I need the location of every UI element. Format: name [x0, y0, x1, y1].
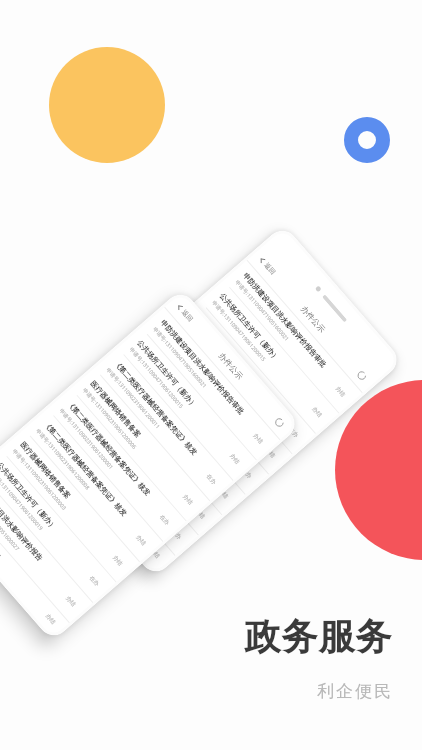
staticText: 申请号:13110904719061200019 — [71, 421, 128, 485]
staticText: 申请号:13110904719051600027 — [0, 488, 22, 552]
staticText: 医疗器械网络销售备案 — [18, 440, 72, 500]
staticText: 办结 — [228, 453, 241, 466]
button[interactable]: 公共场所卫生许可（新办） — [117, 328, 256, 481]
staticText: 办结 — [217, 487, 230, 501]
staticText: 医疗器械网络销售备案 — [89, 379, 143, 439]
staticText: 办结 — [111, 554, 124, 568]
staticText: 在办 — [170, 528, 183, 541]
staticText: 办结 — [64, 595, 78, 608]
button[interactable]: 医疗器械网络销售备案 — [0, 490, 69, 638]
staticText: 办结 — [148, 547, 161, 560]
button[interactable]: 申防洪建设项目洪水影响评价报告审批 — [141, 307, 280, 461]
staticText: 返回 — [262, 261, 277, 276]
button[interactable]: 公共场所卫生许可（新办） — [200, 281, 339, 434]
staticText: 申防洪建设项目洪水影响评价报告审批 — [159, 318, 246, 417]
staticText: 利企便民 — [316, 681, 392, 702]
staticText: 在办 — [287, 426, 300, 440]
button[interactable]: 医疗器械网络销售备案 — [153, 321, 292, 475]
staticText: 政务服务 — [244, 614, 392, 659]
staticText: 公共场所卫生许可（新办） — [135, 338, 199, 410]
staticText: 申请号:13110902319061200008 — [117, 380, 174, 444]
staticText: 防洪建设项目洪水影响评价报告 — [0, 481, 45, 563]
staticText: 申请号:13110902319061200011 — [105, 366, 162, 430]
staticText: 医疗器械网络销售备案 — [171, 332, 225, 392]
button[interactable]: 防洪建设项目洪水影响评价报告 — [39, 423, 175, 574]
staticText: 申请号:13110904719051600021 — [152, 325, 209, 389]
staticText: 申请号:13110902319061200006 — [164, 339, 221, 404]
staticText: 防洪建设项目洪水影响评价报告 — [54, 434, 127, 516]
staticText: 在办 — [158, 514, 171, 527]
staticText: 《第二类医疗器械经营备案凭证》核发 — [124, 373, 212, 472]
staticText: 医疗器械网络销售备案 — [101, 393, 155, 453]
button[interactable]: 《第二类医疗器械经营备案凭证》核发 — [47, 389, 186, 542]
button[interactable]: 申防洪建设项目洪水影响评价报告审批 — [223, 260, 362, 414]
button[interactable]: 医疗器械网络销售备案 — [83, 382, 222, 536]
staticText: 《第二类医疗器械经营备案凭证》核发 — [65, 399, 153, 498]
button[interactable]: 刷新 — [353, 366, 370, 383]
staticText: 公共场所卫生许可（新办） — [218, 291, 282, 363]
staticText: 公共场所卫生许可（新办） — [0, 460, 59, 532]
staticText: 申请号:13110902319061200001 — [58, 407, 115, 471]
staticText: 《第二类医疗器械经营备案凭证》核发 — [194, 312, 282, 411]
staticText: 办结 — [44, 613, 57, 626]
staticText: 《第二类医疗器械经营备案凭证》核发 — [42, 420, 129, 518]
staticText: 申防洪建设项目洪水影响评价报告审批 — [241, 271, 329, 370]
staticText: 办件公示 — [299, 304, 328, 334]
button[interactable]: 《第二类医疗器械经营备案凭证》核发 — [94, 348, 233, 501]
button[interactable]: 《第二类医疗器械经营备案凭证》核发 — [106, 362, 245, 515]
staticText: 办结 — [264, 446, 277, 460]
button[interactable]: 医疗器械网络销售备案 — [0, 429, 139, 583]
staticText: 《第二类医疗器械经营备案凭证》核发 — [147, 352, 235, 451]
staticText: 申请号:13110904719061200019 — [0, 468, 45, 532]
button[interactable]: 防洪建设项目洪水影响评价报告 — [0, 470, 92, 623]
button[interactable]: 《第二类医疗器械经营备案凭证》核发 — [130, 342, 268, 495]
staticText: 办结 — [193, 507, 207, 521]
button[interactable]: 返回 — [175, 302, 195, 323]
staticText: 申请号:13110902319061200001 — [141, 360, 198, 424]
button[interactable]: 《第二类医疗器械经营备案凭证》核发 — [176, 301, 315, 454]
staticText: 申请号:13110904719051600027 — [49, 441, 104, 503]
button[interactable]: 返回 — [257, 255, 277, 276]
button[interactable]: 刷新 — [271, 413, 288, 430]
button[interactable]: 公共场所卫生许可（新办） — [0, 450, 116, 603]
staticText: 医疗器械网络销售备案 — [0, 501, 2, 561]
staticText: 在办 — [240, 467, 253, 480]
staticText: 申请号:13110904719051600021 — [234, 278, 291, 343]
button[interactable]: 《第二类医疗器械经营备案凭证》核发 — [24, 409, 163, 562]
staticText: 在办 — [88, 575, 101, 588]
staticText: 公共场所卫生许可（新办） — [77, 413, 141, 485]
staticText: 办结 — [181, 493, 194, 507]
staticText: 申请号:13110904719061200015 — [211, 299, 268, 363]
staticText: 申请号:13110902319061200003 — [94, 400, 151, 465]
button[interactable]: 公共场所卫生许可（新办） — [59, 403, 198, 556]
staticText: 《第二类医疗器械经营备案凭证》核发 — [112, 359, 199, 457]
staticText: 申请号:13110902319061200003 — [12, 447, 69, 512]
staticText: 申请号:13110902319061200011 — [187, 319, 245, 383]
staticText: 在办 — [205, 473, 218, 486]
staticText: 办结 — [334, 385, 347, 399]
staticText: 办件公示 — [217, 351, 245, 381]
staticText: 办结 — [134, 534, 148, 547]
staticText: 办结 — [310, 406, 324, 419]
staticText: 申请号:13110902319061200008 — [35, 427, 92, 491]
staticText: 申请号:13110904719061200015 — [129, 346, 186, 410]
staticText: 返回 — [180, 308, 195, 323]
staticText: 办结 — [251, 432, 265, 446]
staticText: 申请号:13110902319061200006 — [82, 386, 139, 451]
button[interactable]: 医疗器械网络销售备案 — [71, 368, 209, 522]
